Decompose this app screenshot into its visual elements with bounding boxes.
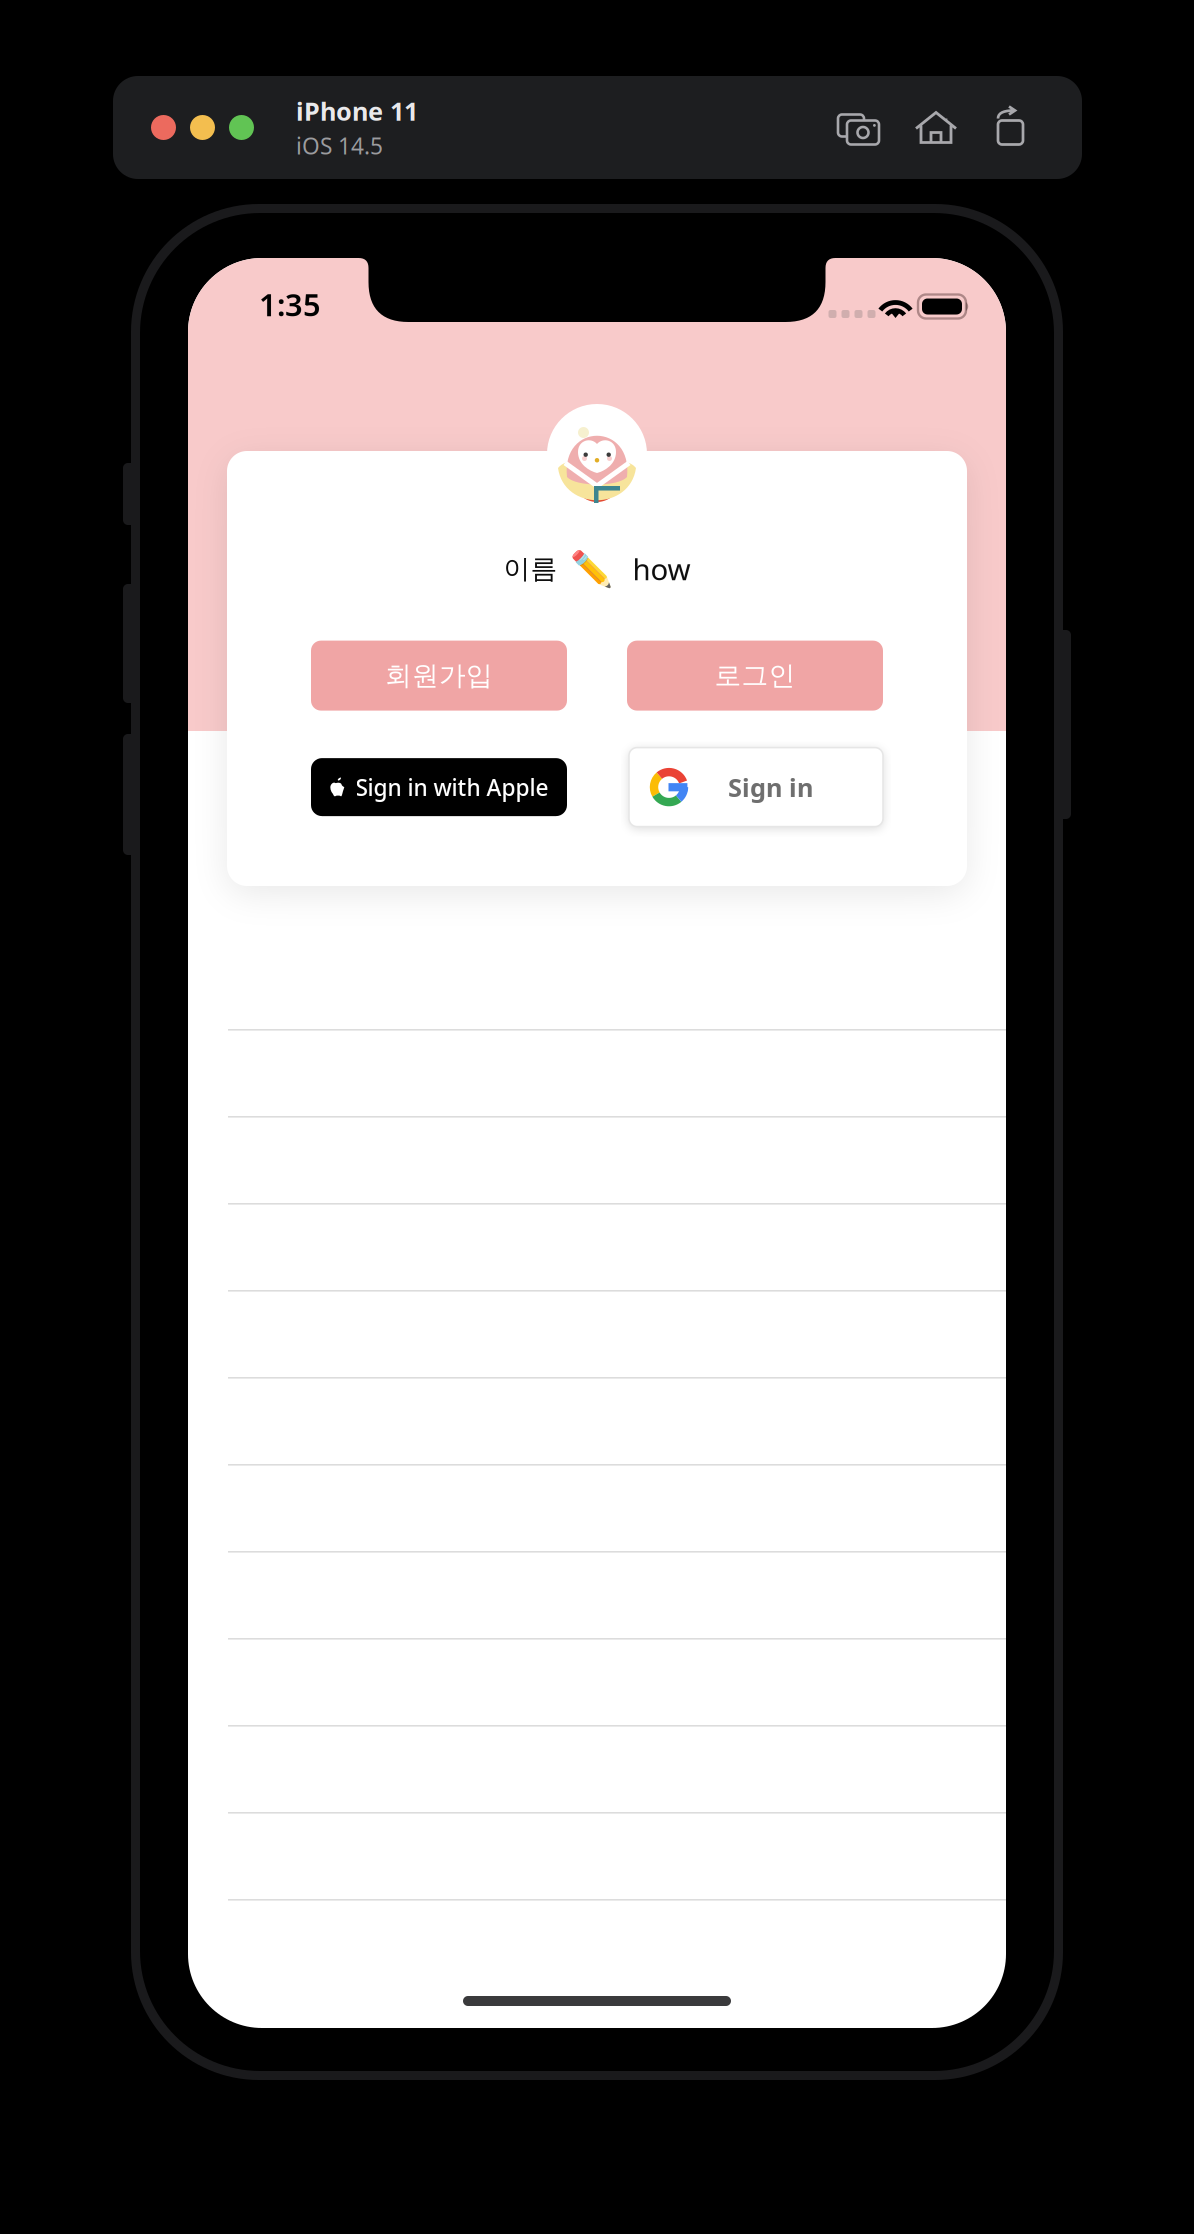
- button[interactable]: 로그인: [627, 641, 883, 711]
- staticText: iOS 14.5: [296, 131, 383, 161]
- staticText: how: [632, 549, 690, 588]
- staticText: 1:35: [259, 284, 321, 325]
- staticText: 로그인: [714, 659, 795, 692]
- button[interactable]: 회원가입: [311, 641, 567, 711]
- staticText: ✏️: [569, 549, 612, 589]
- staticText: iPhone 11: [296, 94, 418, 128]
- button[interactable]: Sign in: [629, 748, 883, 827]
- staticText: 회원가입: [385, 659, 493, 692]
- button[interactable]: Sign in with Apple: [311, 758, 567, 816]
- button[interactable]: Minimize window: [190, 115, 215, 140]
- button[interactable]: Close window: [151, 115, 176, 140]
- button[interactable]: Rotate device: [990, 105, 1030, 149]
- button[interactable]: Home: [914, 106, 958, 148]
- button[interactable]: Zoom window: [229, 115, 254, 140]
- staticText: Sign in: [728, 770, 813, 804]
- button[interactable]: Take screenshot: [836, 106, 882, 148]
- staticText: 이름: [503, 552, 557, 585]
- staticText: Sign in with Apple: [355, 772, 548, 802]
